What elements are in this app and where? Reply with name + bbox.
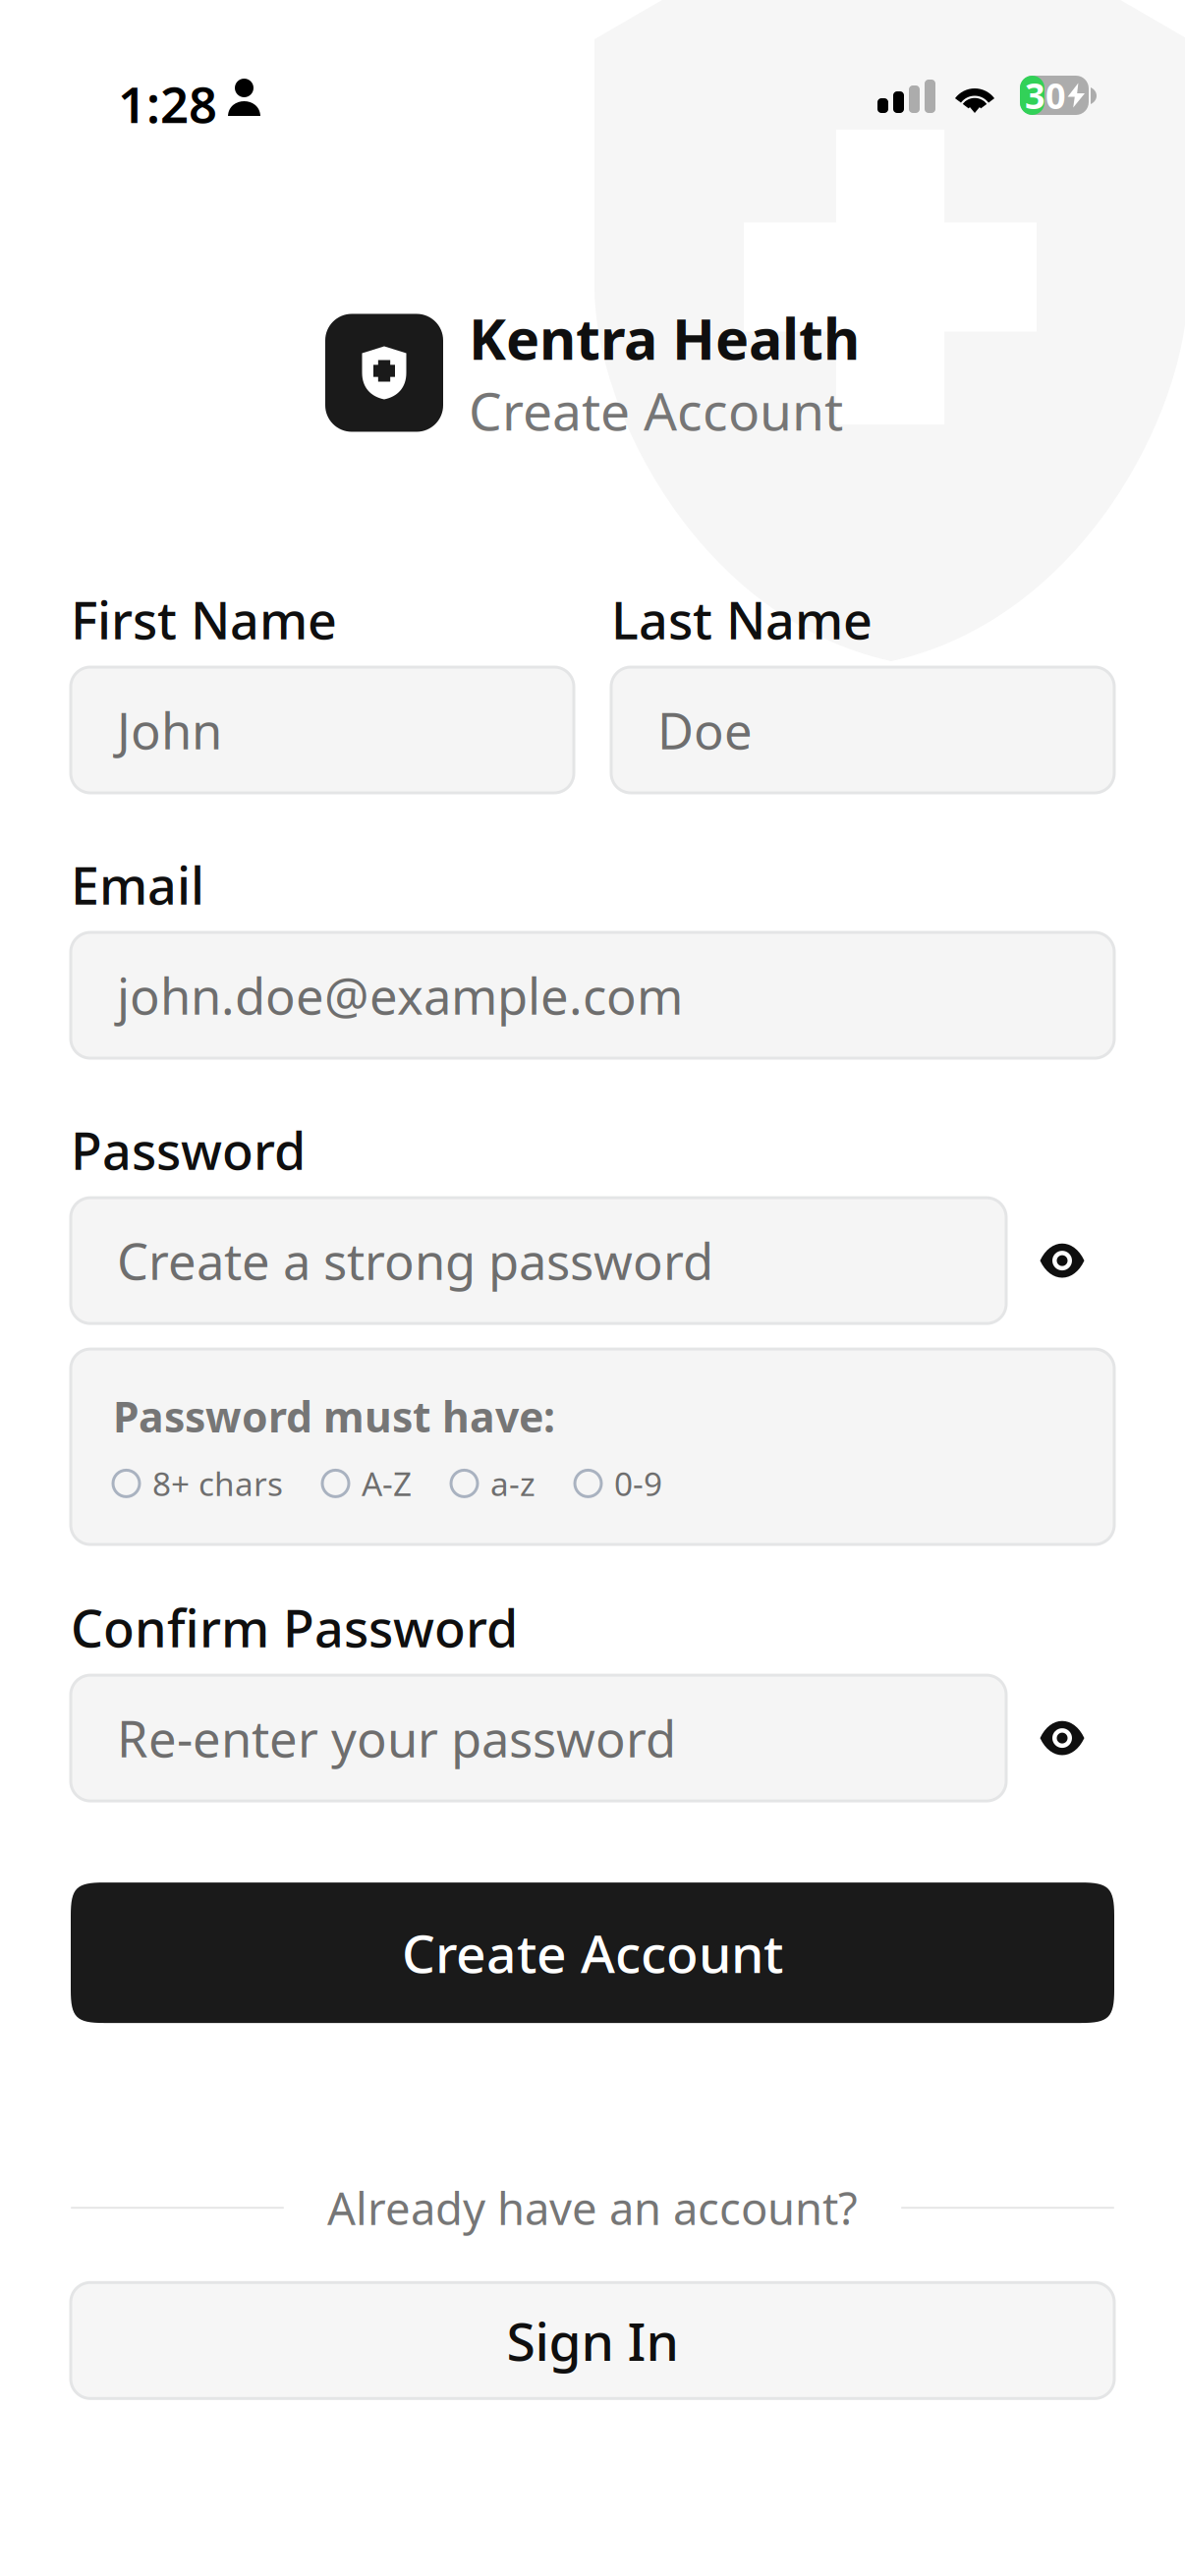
- staticText: 30: [1025, 72, 1066, 119]
- staticText: Confirm Password: [71, 1594, 518, 1661]
- staticText: Re-enter your password: [117, 1705, 676, 1771]
- staticText: A-Z: [362, 1462, 412, 1505]
- staticText: Create Account: [469, 375, 843, 445]
- staticText: a-z: [490, 1462, 536, 1505]
- staticText: Create a strong password: [117, 1228, 713, 1294]
- staticText: 1:28: [118, 71, 217, 137]
- staticText: Sign In: [507, 2306, 678, 2375]
- staticText: Create Account: [402, 1918, 783, 1988]
- staticText: Last Name: [611, 586, 873, 653]
- staticText: Doe: [657, 697, 753, 763]
- staticText: Kentra Health: [469, 301, 860, 375]
- staticText: Password: [71, 1116, 306, 1184]
- button[interactable]: Show confirm password: [1024, 1700, 1100, 1776]
- button[interactable]: Show password: [1024, 1222, 1100, 1299]
- staticText: Password must have:: [113, 1388, 555, 1444]
- staticText: John: [117, 697, 222, 763]
- staticText: First Name: [71, 586, 337, 653]
- button[interactable]: Create Account: [71, 1882, 1114, 2023]
- staticText: Already have an account?: [327, 2178, 858, 2237]
- button[interactable]: Sign In: [71, 2283, 1114, 2398]
- staticText: 0-9: [614, 1462, 662, 1505]
- staticText: john.doe@example.com: [117, 962, 683, 1028]
- staticText: 8+ chars: [152, 1462, 283, 1505]
- staticText: Email: [71, 851, 204, 919]
